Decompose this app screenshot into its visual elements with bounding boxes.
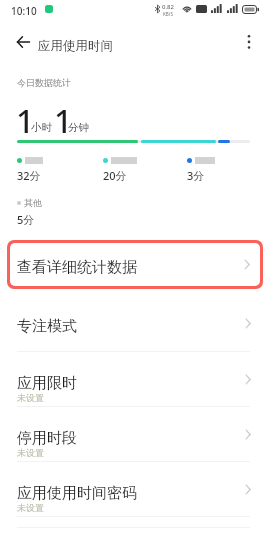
staticText: 分钟 (68, 121, 89, 134)
staticText: 小时 (31, 121, 52, 134)
staticText: 应用使用时间 (38, 38, 113, 54)
staticText: 10:10 (11, 4, 37, 18)
button[interactable]: 查看详细统计数据 (10, 243, 260, 286)
button[interactable]: 停用时段 (0, 407, 266, 462)
button[interactable]: More options (236, 22, 262, 56)
staticText: 0.82 (162, 3, 174, 11)
staticText: 1 (16, 99, 35, 143)
button[interactable]: Back (9, 22, 37, 56)
staticText: 应用限时 (17, 374, 77, 393)
staticText: 5分 (17, 212, 35, 227)
button[interactable]: 专注模式 (0, 296, 266, 352)
staticText: 3分 (187, 168, 205, 183)
button[interactable]: 应用使用时间密码 (0, 462, 266, 517)
staticText: 未设置 (17, 392, 44, 403)
staticText: 未设置 (17, 447, 44, 458)
staticText: 专注模式 (17, 317, 77, 336)
staticText: 应用使用时间密码 (17, 484, 137, 503)
staticText: 今日数据统计 (17, 77, 71, 88)
staticText: 查看详细统计数据 (17, 258, 137, 277)
staticText: KB/S (163, 11, 173, 17)
staticText: 停用时段 (17, 429, 77, 448)
staticText: 其他 (24, 197, 42, 208)
staticText: 20分 (103, 168, 127, 183)
staticText: 32分 (17, 168, 41, 183)
button[interactable]: 应用限时 (0, 352, 266, 407)
staticText: 1 (54, 99, 73, 143)
staticText: 未设置 (17, 502, 44, 513)
